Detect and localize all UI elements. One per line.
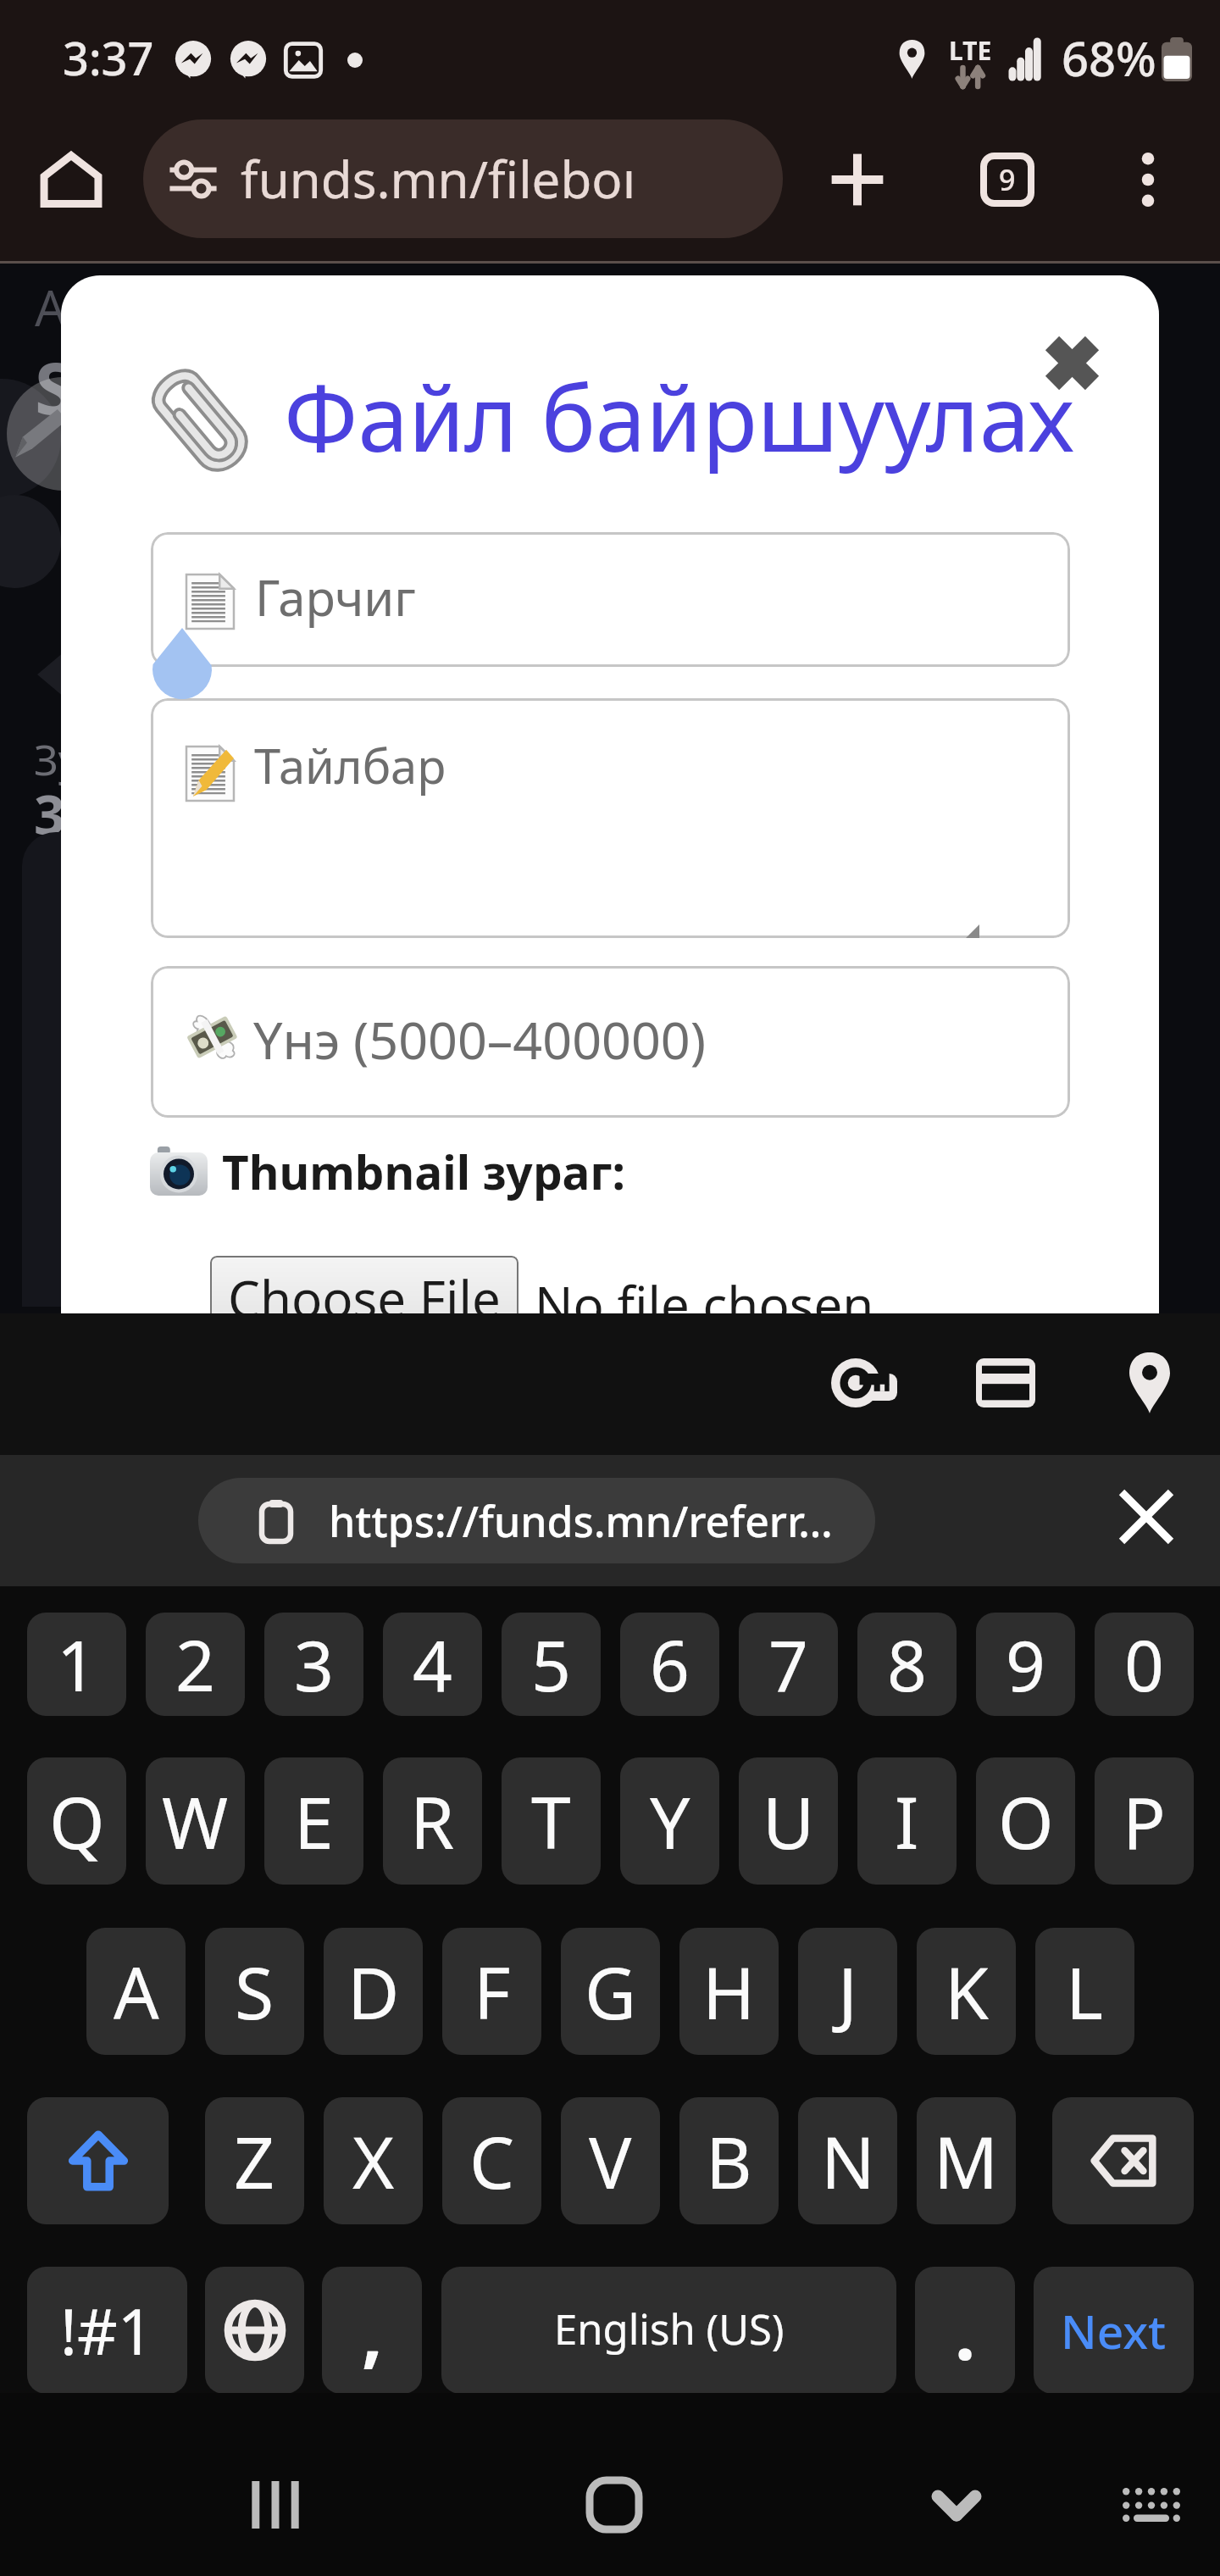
staticText: English (US) — [554, 2301, 785, 2357]
button[interactable] — [151, 532, 1070, 667]
staticText: E — [294, 1773, 334, 1869]
staticText: R — [410, 1773, 455, 1869]
button[interactable]: English (US) — [441, 2267, 896, 2394]
staticText: O — [998, 1773, 1054, 1869]
button[interactable]: !#1 — [27, 2267, 187, 2394]
button[interactable]: A — [86, 1928, 186, 2055]
staticText: H — [702, 1943, 756, 2040]
staticText: T — [531, 1773, 571, 1869]
button[interactable]: X — [324, 2097, 423, 2224]
staticText: 8 — [887, 1617, 927, 1712]
staticText: Y — [650, 1773, 690, 1869]
button[interactable]: O — [976, 1757, 1075, 1885]
staticText: 4 — [413, 1617, 452, 1712]
staticText: Thumbnail зураг: — [222, 1140, 625, 1203]
staticText: G — [585, 1943, 637, 2040]
button[interactable]: 7 — [739, 1613, 838, 1716]
button[interactable]: funds.mn/fileboı — [143, 119, 783, 238]
button[interactable]: B — [679, 2097, 779, 2224]
button[interactable]: D — [324, 1928, 423, 2055]
button[interactable]: K — [917, 1928, 1016, 2055]
button[interactable]: Backspace — [1052, 2097, 1194, 2224]
staticText: 1 — [57, 1617, 97, 1712]
staticText: . — [955, 2282, 976, 2381]
staticText: 3 — [294, 1617, 334, 1712]
staticText: funds.mn/fileboı — [241, 144, 636, 214]
button[interactable]: 4 — [383, 1613, 482, 1716]
staticText: V — [589, 2112, 632, 2209]
button[interactable]: R — [383, 1757, 482, 1885]
button[interactable]: 8 — [857, 1613, 957, 1716]
staticText: W — [162, 1773, 229, 1869]
button[interactable]: Payment methods — [955, 1332, 1056, 1434]
button[interactable]: . — [915, 2267, 1015, 2394]
staticText: F — [474, 1943, 511, 2040]
button[interactable]: Next — [1034, 2267, 1194, 2394]
staticText: Үнэ (5000–400000) — [253, 1004, 706, 1074]
button[interactable]: 0 — [1095, 1613, 1194, 1716]
staticText: 6 — [650, 1617, 690, 1712]
button[interactable]: H — [679, 1928, 779, 2055]
button[interactable]: 3 — [264, 1613, 363, 1716]
button[interactable]: Y — [620, 1757, 719, 1885]
staticText: https://funds.mn/referr… — [329, 1492, 833, 1550]
button[interactable]: Passwords — [813, 1332, 915, 1434]
staticText: 3 — [34, 777, 65, 851]
button[interactable]: Shift — [27, 2097, 169, 2224]
staticText: Зу — [34, 730, 80, 788]
button[interactable]: T — [502, 1757, 601, 1885]
button[interactable]: 5 — [502, 1613, 601, 1716]
button[interactable]: 6 — [620, 1613, 719, 1716]
staticText: C — [469, 2112, 515, 2209]
button[interactable]: Recent apps — [225, 2454, 326, 2556]
button[interactable]: I — [857, 1757, 957, 1885]
staticText: S — [35, 338, 75, 435]
button[interactable]: Addresses — [1099, 1332, 1201, 1434]
button[interactable]: Home — [563, 2454, 665, 2556]
button[interactable]: U — [739, 1757, 838, 1885]
button[interactable]: S — [205, 1928, 304, 2055]
staticText: , — [362, 2282, 383, 2381]
button[interactable]: Switch tabs — [968, 141, 1046, 219]
button[interactable]: Show keyboard — [1101, 2454, 1202, 2556]
button[interactable]: Choose File — [210, 1256, 518, 1325]
button[interactable]: Z — [205, 2097, 304, 2224]
button[interactable]: New tab — [818, 141, 896, 219]
staticText: X — [352, 2112, 395, 2209]
button[interactable]: Change language — [205, 2267, 304, 2394]
button[interactable]: Hide keyboard — [906, 2455, 1007, 2557]
staticText: Тайлбар — [254, 733, 446, 797]
button[interactable]: 9 — [976, 1613, 1075, 1716]
button[interactable]: 2 — [146, 1613, 245, 1716]
button[interactable]: F — [442, 1928, 541, 2055]
button[interactable]: https://funds.mn/referr… — [198, 1478, 875, 1563]
button[interactable]: Home — [32, 141, 110, 219]
staticText: U — [762, 1773, 815, 1869]
staticText: 0 — [1124, 1617, 1164, 1712]
staticText: LTE — [949, 33, 992, 68]
button[interactable]: L — [1035, 1928, 1134, 2055]
button[interactable]: J — [798, 1928, 897, 2055]
staticText: 5 — [531, 1617, 571, 1712]
staticText: P — [1123, 1773, 1166, 1869]
button[interactable]: C — [442, 2097, 541, 2224]
staticText: D — [347, 1943, 400, 2040]
button[interactable]: 1 — [27, 1613, 126, 1716]
staticText: No file chosen — [535, 1269, 874, 1325]
button[interactable]: Dismiss suggestion — [1099, 1469, 1194, 1564]
button[interactable]: More options — [1109, 141, 1187, 219]
button[interactable]: N — [798, 2097, 897, 2224]
staticText: A — [35, 274, 67, 341]
button[interactable]: V — [561, 2097, 660, 2224]
button[interactable]: , — [322, 2267, 422, 2394]
button[interactable]: E — [264, 1757, 363, 1885]
button[interactable]: P — [1095, 1757, 1194, 1885]
button[interactable] — [151, 966, 1070, 1118]
button[interactable] — [151, 698, 1070, 938]
button[interactable]: M — [917, 2097, 1016, 2224]
button[interactable]: G — [561, 1928, 660, 2055]
staticText: 9 — [999, 160, 1016, 199]
button[interactable]: W — [146, 1757, 245, 1885]
button[interactable]: Q — [27, 1757, 126, 1885]
button[interactable]: Close dialog — [1034, 325, 1110, 401]
